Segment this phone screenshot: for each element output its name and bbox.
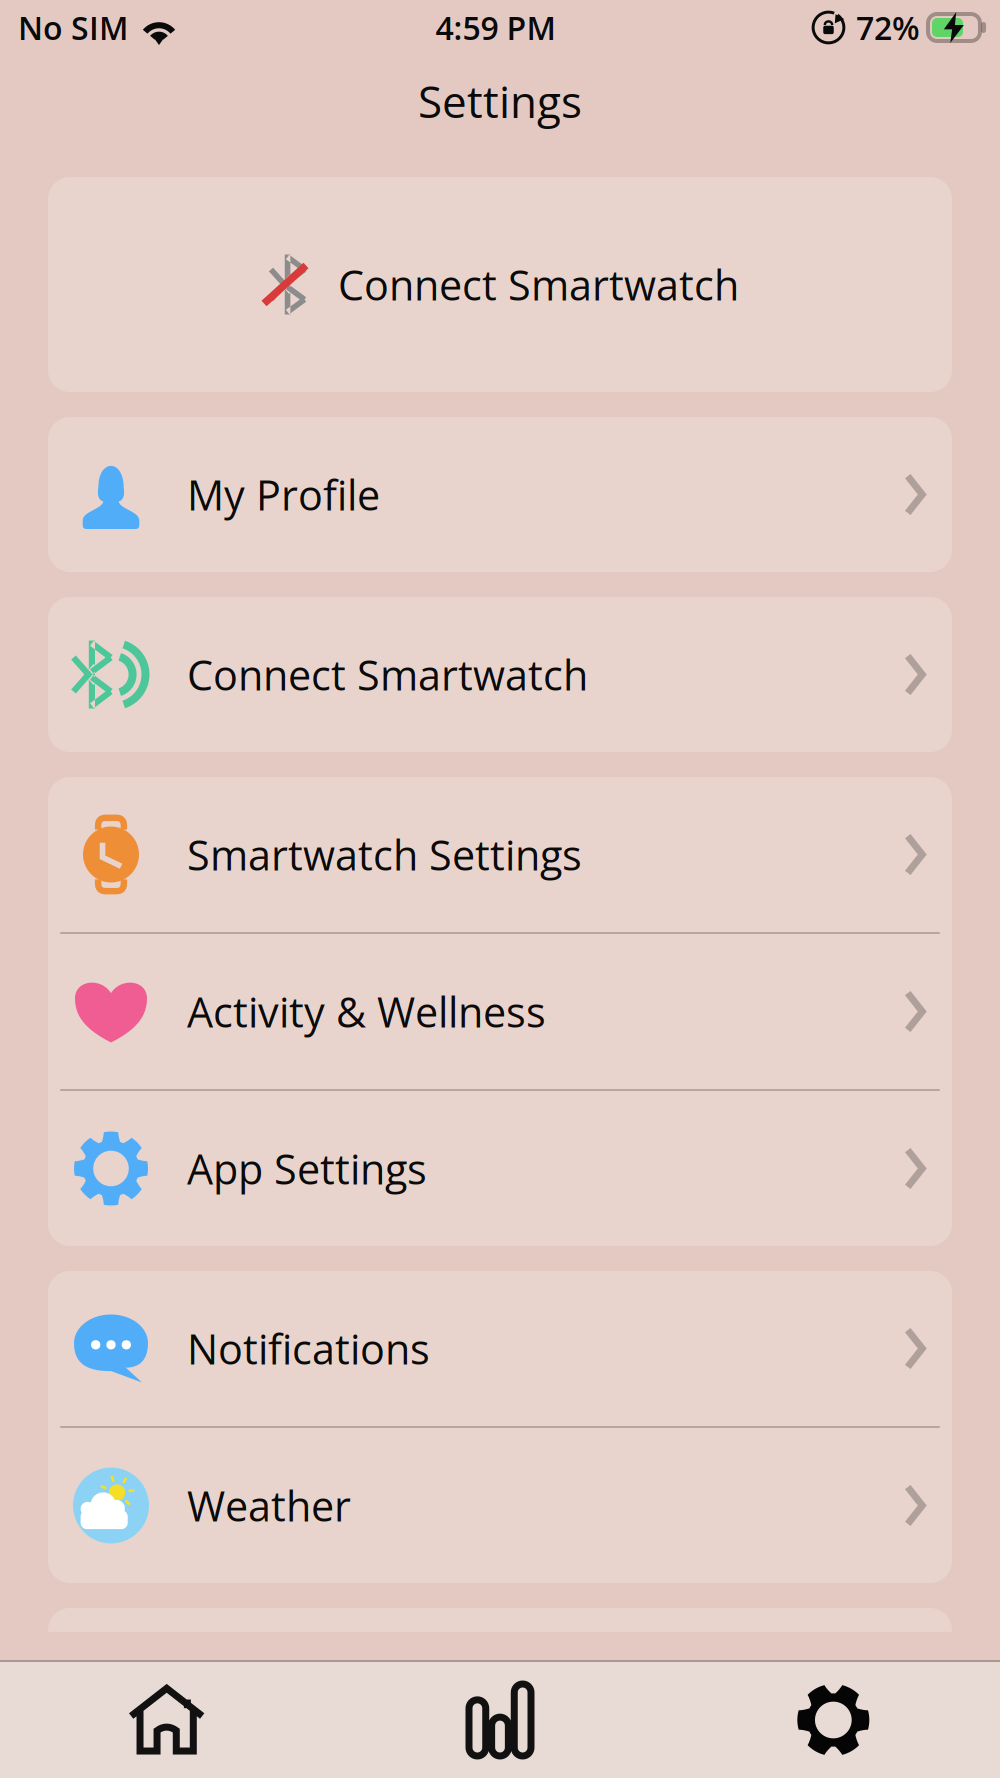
staticText: Notifications bbox=[187, 1320, 430, 1377]
staticText: 4:59 PM bbox=[435, 6, 555, 49]
staticText: Activity & Wellness bbox=[187, 983, 546, 1040]
button[interactable]: Activity & Wellness bbox=[48, 934, 952, 1089]
button[interactable]: Connect Smartwatch bbox=[48, 597, 952, 752]
button[interactable]: Smartwatch Settings bbox=[48, 777, 952, 932]
staticText: Weather bbox=[187, 1477, 351, 1534]
button[interactable]: App Settings bbox=[48, 1091, 952, 1246]
button[interactable]: Connect Smartwatch bbox=[48, 177, 952, 392]
staticText: No SIM bbox=[18, 6, 128, 49]
button[interactable]: My Profile bbox=[48, 417, 952, 572]
button[interactable]: Settings bbox=[667, 1662, 1000, 1778]
staticText: About bbox=[187, 1657, 303, 1714]
button[interactable]: Home bbox=[0, 1662, 333, 1778]
staticText: Settings bbox=[418, 71, 582, 131]
staticText: Connect Smartwatch bbox=[187, 646, 588, 703]
staticText: Connect Smartwatch bbox=[338, 256, 739, 313]
staticText: Smartwatch Settings bbox=[187, 826, 582, 883]
staticText: 72% bbox=[856, 6, 920, 49]
button[interactable]: Activity bbox=[333, 1662, 667, 1778]
staticText: App Settings bbox=[187, 1140, 427, 1197]
staticText: My Profile bbox=[187, 466, 380, 523]
button[interactable]: Weather bbox=[48, 1428, 952, 1583]
button[interactable]: Notifications bbox=[48, 1271, 952, 1426]
button[interactable]: About bbox=[48, 1608, 952, 1763]
